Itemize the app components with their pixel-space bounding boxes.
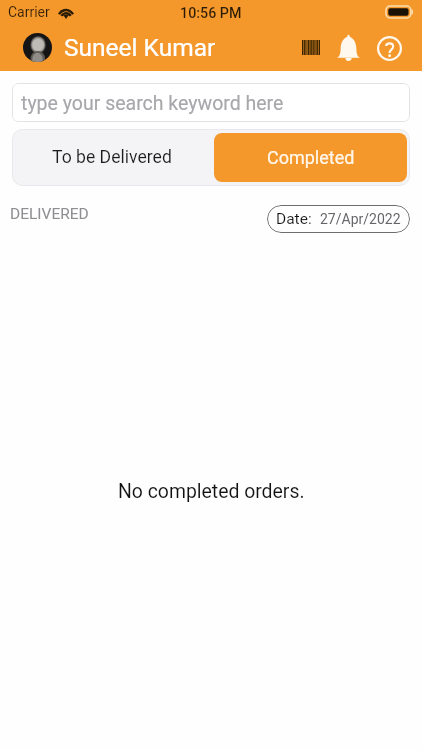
staticText: type your search keyword here [21, 92, 284, 115]
staticText: DELIVERED [10, 205, 89, 223]
button[interactable]: Date: [267, 205, 410, 233]
button[interactable]: type your search keyword here [12, 83, 410, 122]
button[interactable]: Completed [214, 133, 407, 182]
button[interactable]: Profile [23, 33, 52, 62]
staticText: To be Delivered [52, 147, 172, 168]
staticText: Carrier [8, 4, 50, 20]
button[interactable]: Scan barcode [295, 28, 325, 68]
staticText: Completed [267, 147, 355, 168]
button[interactable]: Notifications [333, 28, 363, 68]
button[interactable]: Help [374, 28, 404, 68]
staticText: Suneel Kumar [64, 33, 216, 62]
staticText: 27/Apr/2022 [320, 211, 401, 227]
staticText: Date: [276, 210, 312, 228]
button[interactable]: To be Delivered [12, 129, 211, 186]
staticText: 10:56 PM [180, 5, 242, 22]
staticText: No completed orders. [118, 480, 305, 503]
